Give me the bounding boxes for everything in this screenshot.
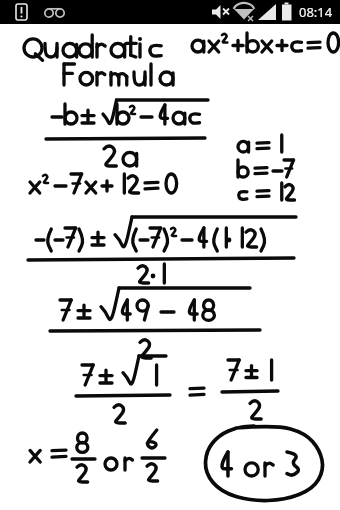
button[interactable]: Handwritten note: quadratic formula — [0, 0, 340, 510]
staticText: 08:14 — [299, 3, 333, 21]
